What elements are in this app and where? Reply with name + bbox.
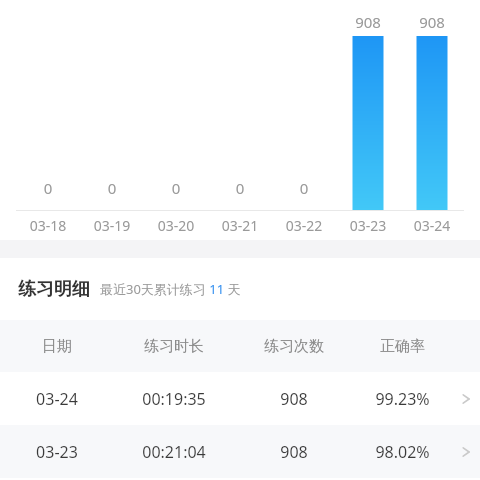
staticText: 最近30天累计练习 11 天 — [100, 280, 241, 298]
staticText: 98.02% — [375, 441, 430, 463]
staticText: 03-18 — [16, 216, 80, 235]
staticText: 0 — [144, 178, 208, 198]
staticText: 03-19 — [80, 216, 144, 235]
staticText: 练习时长 — [144, 337, 204, 356]
staticText: 0 — [80, 178, 144, 198]
staticText: 908 — [336, 12, 400, 32]
button[interactable]: 03-24 — [0, 372, 480, 425]
staticText: 99.23% — [375, 388, 430, 410]
staticText: 03-21 — [208, 216, 272, 235]
staticText: 03-24 — [36, 388, 78, 410]
staticText: 00:21:04 — [142, 441, 206, 463]
staticText: 908 — [280, 388, 308, 410]
staticText: 正确率 — [380, 337, 425, 356]
staticText: 03-23 — [336, 216, 400, 235]
staticText: 03-20 — [144, 216, 208, 235]
staticText: 练习次数 — [264, 337, 324, 356]
staticText: 0 — [16, 178, 80, 198]
staticText: 练习明细 — [18, 278, 90, 301]
staticText: 日期 — [42, 337, 72, 356]
other: View details — [451, 425, 480, 478]
other: View details — [451, 372, 480, 425]
button[interactable]: 03-23 — [0, 425, 480, 478]
staticText: 03-22 — [272, 216, 336, 235]
staticText: 00:19:35 — [142, 388, 206, 410]
staticText: 908 — [400, 12, 464, 32]
staticText: 0 — [208, 178, 272, 198]
staticText: 908 — [280, 441, 308, 463]
staticText: 03-24 — [400, 216, 464, 235]
staticText: 0 — [272, 178, 336, 198]
staticText: 03-23 — [36, 441, 78, 463]
